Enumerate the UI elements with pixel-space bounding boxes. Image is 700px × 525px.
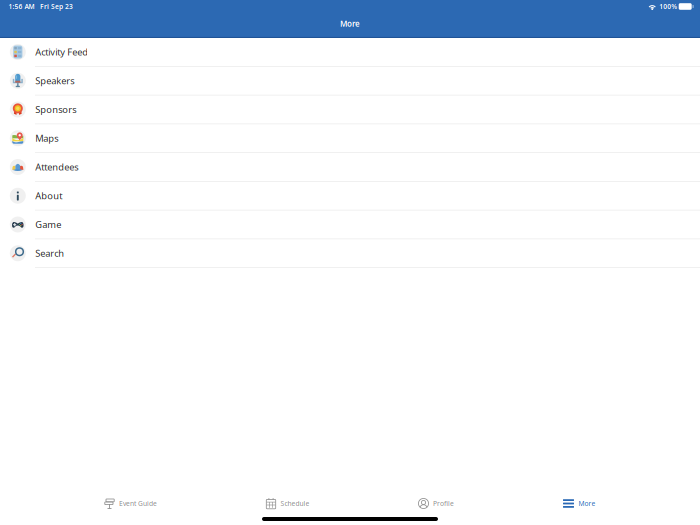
staticText: Activity Feed [35,46,88,58]
button[interactable]: Search [0,239,700,268]
staticText: More [340,18,360,29]
staticText: Event Guide [119,499,157,508]
staticText: Fri Sep 23 [40,2,73,11]
staticText: Schedule [280,499,309,508]
staticText: Game [35,218,61,231]
staticText: Maps [35,132,58,144]
button[interactable]: Event Guide [104,497,157,509]
staticText: 100% [659,2,677,11]
button[interactable]: Profile [418,497,454,509]
button[interactable]: Sponsors [0,95,700,124]
staticText: More [578,499,595,508]
staticText: Profile [433,499,454,508]
staticText: Speakers [35,75,74,87]
button[interactable]: Activity Feed [0,38,700,67]
button[interactable]: About [0,182,700,211]
button[interactable]: Game [0,210,700,239]
button[interactable]: Attendees [0,153,700,182]
staticText: About [35,190,62,202]
staticText: Search [35,247,64,259]
button[interactable]: Speakers [0,67,700,96]
staticText: 1:56 AM [8,2,34,11]
button[interactable]: Maps [0,124,700,153]
button[interactable]: More [563,497,595,509]
staticText: Sponsors [35,103,76,116]
staticText: Attendees [35,161,78,173]
button[interactable]: Schedule [266,497,309,509]
